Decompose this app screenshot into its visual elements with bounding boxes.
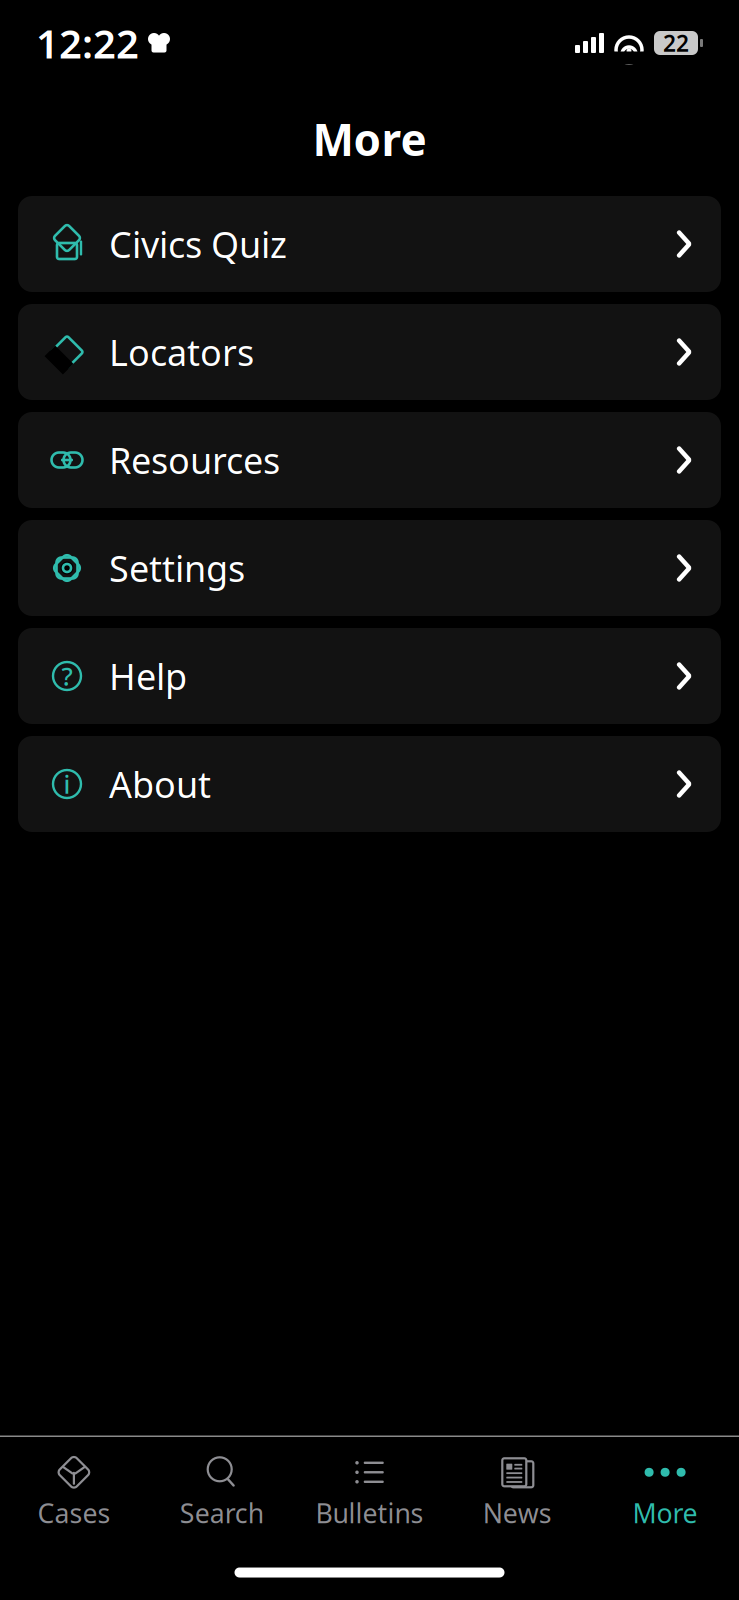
staticText: ? (61, 659, 72, 693)
staticText: 22 (663, 28, 689, 58)
button[interactable]: ? (18, 628, 721, 724)
staticText: Search (180, 1495, 264, 1531)
staticText: Help (109, 652, 187, 700)
staticText: Civics Quiz (109, 220, 287, 268)
staticText: Resources (109, 436, 280, 484)
button[interactable]: Resources (18, 412, 721, 508)
button[interactable]: i (18, 736, 721, 832)
staticText: 12:22 (36, 16, 139, 69)
button[interactable]: News (443, 1445, 591, 1537)
staticText: About (109, 760, 211, 808)
button[interactable]: Bulletins (296, 1445, 443, 1537)
button[interactable]: Settings (18, 520, 721, 616)
button[interactable]: More (591, 1445, 739, 1537)
button[interactable]: Locators (18, 304, 721, 400)
staticText: i (63, 767, 70, 801)
button[interactable]: Search (148, 1445, 296, 1537)
button[interactable]: Civics Quiz (18, 196, 721, 292)
staticText: Cases (37, 1495, 110, 1531)
button[interactable]: Cases (0, 1445, 148, 1537)
staticText: Bulletins (315, 1495, 423, 1531)
staticText: More (312, 110, 426, 168)
staticText: News (483, 1495, 552, 1531)
staticText: Locators (109, 328, 254, 376)
staticText: More (633, 1495, 698, 1531)
staticText: Settings (109, 544, 245, 592)
